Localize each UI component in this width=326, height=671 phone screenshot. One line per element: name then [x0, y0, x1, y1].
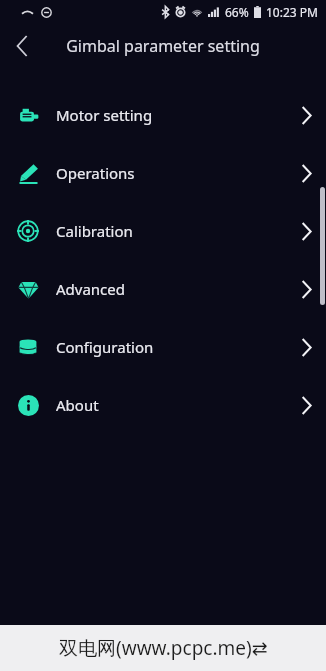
button[interactable]: About	[0, 376, 326, 434]
staticText: Motor setting	[56, 105, 153, 125]
button[interactable]: Calibration	[0, 202, 326, 260]
staticText: 10:23 PM	[266, 4, 318, 20]
staticText: Advanced	[56, 279, 126, 299]
staticText: 66%	[225, 4, 249, 20]
button[interactable]: Back	[0, 24, 44, 68]
staticText: Operations	[56, 163, 135, 183]
button[interactable]: Operations	[0, 144, 326, 202]
staticText: Gimbal parameter setting	[66, 35, 260, 57]
button[interactable]: Configuration	[0, 318, 326, 376]
button[interactable]: Advanced	[0, 260, 326, 318]
staticText: About	[56, 395, 99, 415]
staticText: Calibration	[56, 221, 133, 241]
button[interactable]: Motor setting	[0, 86, 326, 144]
staticText: 双电网(www.pcpc.me)⇄	[59, 635, 268, 661]
staticText: Configuration	[56, 337, 154, 357]
